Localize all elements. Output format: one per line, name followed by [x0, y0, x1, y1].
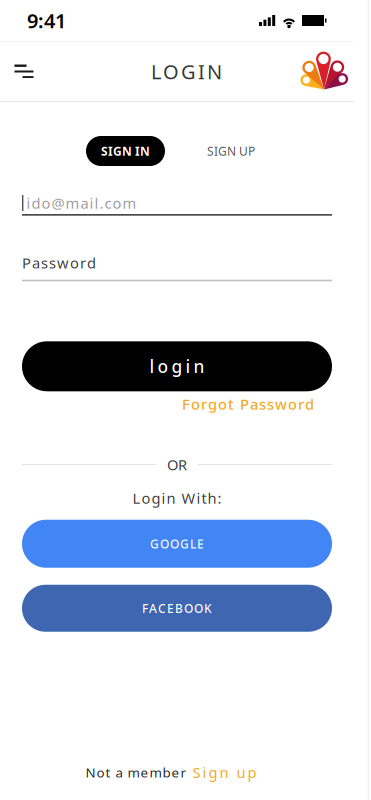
- staticText: S i g n u p: [192, 762, 256, 782]
- staticText: N o t a m e m b e r: [85, 763, 186, 781]
- staticText: L O G I N: [151, 58, 222, 85]
- button[interactable]: Home: [296, 47, 352, 95]
- staticText: 9:41: [27, 7, 66, 34]
- button[interactable]: Menu: [4, 51, 44, 91]
- staticText: OR: [167, 455, 187, 474]
- button[interactable]: SIGN IN: [86, 136, 165, 166]
- staticText: SIGN IN: [101, 143, 150, 159]
- staticText: F o r g o t P a s s w o r d: [182, 394, 314, 414]
- button[interactable]: G O O G L E: [22, 520, 332, 568]
- button[interactable]: F A C E B O O K: [22, 585, 332, 632]
- staticText: l o g i n: [149, 355, 204, 378]
- staticText: G O O G L E: [150, 536, 204, 552]
- staticText: SIGN UP: [207, 143, 255, 159]
- staticText: F A C E B O O K: [142, 600, 212, 616]
- button[interactable]: SIGN UP: [197, 136, 265, 166]
- button[interactable]: l o g i n: [22, 341, 332, 391]
- staticText: i d o @ m a i l . c o m: [26, 193, 136, 213]
- staticText: P a s s w o r d: [22, 253, 96, 272]
- button[interactable]: S i g n u p: [192, 762, 256, 782]
- staticText: L o g i n W i t h :: [132, 488, 221, 508]
- button[interactable]: F o r g o t P a s s w o r d: [182, 394, 314, 414]
